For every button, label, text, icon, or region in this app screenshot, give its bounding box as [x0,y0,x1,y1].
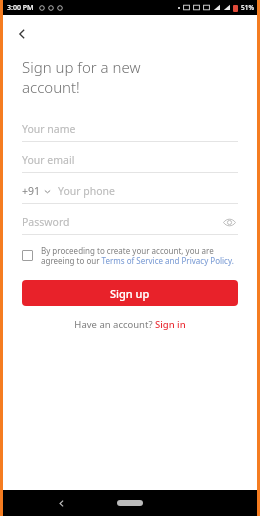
button[interactable]: Have an account? Sign in [3,318,257,331]
staticText: 51% [241,3,254,12]
button[interactable]: Your name [22,117,238,148]
staticText: Sign up [110,286,150,301]
staticText: Your email [22,153,75,167]
staticText: By proceeding to create your account, yo… [41,245,238,266]
staticText: Password [22,215,220,229]
button[interactable]: Back [51,493,71,513]
button[interactable]: +91 [22,179,238,210]
button[interactable]: Back [9,21,35,47]
staticText: Your name [22,122,76,136]
button[interactable]: Password [22,210,238,235]
button[interactable]: Your email [22,148,238,179]
button[interactable]: Show password [220,213,238,231]
staticText: Have an account? Sign in [74,318,186,331]
button[interactable]: Accept terms [22,245,238,266]
other: Accept terms [22,250,33,261]
staticText: Sign up for a new account! [22,57,141,97]
staticText: 3:00 PM [7,3,34,13]
button[interactable]: Home [113,493,147,513]
button[interactable]: Sign up [22,280,238,306]
staticText: +91 [22,184,41,198]
staticText: Your phone [58,184,116,198]
